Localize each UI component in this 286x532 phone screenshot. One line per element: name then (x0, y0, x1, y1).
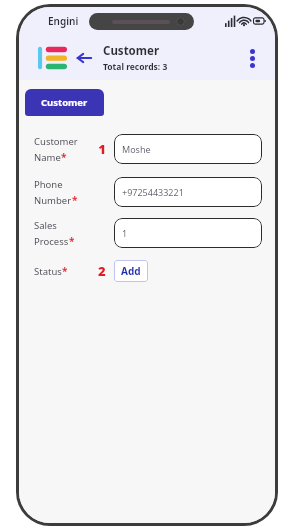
button[interactable]: Back (75, 49, 93, 67)
staticText: Customer (103, 43, 160, 59)
staticText: Engini (48, 14, 79, 28)
staticText: * (72, 193, 78, 207)
button[interactable]: +97254433221 (114, 177, 262, 207)
staticText: Process (34, 235, 69, 248)
staticText: Add (121, 264, 141, 278)
staticText: Name (34, 151, 61, 164)
staticText: Customer (41, 96, 88, 109)
staticText: Customer (34, 135, 78, 148)
button[interactable]: More options (243, 45, 261, 71)
staticText: Status (34, 265, 62, 278)
button[interactable]: 1 (114, 218, 262, 248)
staticText: * (69, 234, 75, 248)
staticText: Phone (34, 178, 63, 191)
staticText: 1 (122, 227, 128, 239)
staticText: * (62, 264, 68, 278)
staticText: Moshe (122, 143, 151, 155)
staticText: +97254433221 (122, 186, 184, 198)
staticText: 1 (98, 140, 106, 158)
button[interactable]: Add (114, 260, 148, 282)
staticText: * (61, 150, 67, 164)
button[interactable]: Moshe (114, 134, 262, 164)
staticText: Total records: 3 (103, 61, 168, 73)
button[interactable]: Customer (25, 89, 104, 116)
staticText: 2 (98, 262, 106, 280)
staticText: Sales (34, 219, 57, 232)
staticText: Number (34, 194, 72, 207)
